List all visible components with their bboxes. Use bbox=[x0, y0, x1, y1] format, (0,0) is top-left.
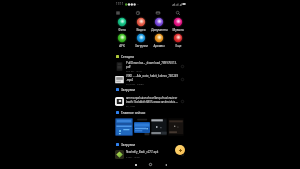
button[interactable]: Загрузки bbox=[132, 32, 150, 48]
button[interactable]: Назад bbox=[158, 160, 173, 169]
button[interactable]: APK bbox=[113, 32, 131, 48]
button[interactable] bbox=[168, 118, 184, 136]
button[interactable] bbox=[115, 118, 133, 136]
button[interactable]: Создать bbox=[175, 145, 185, 155]
button[interactable]: Меню bbox=[111, 9, 124, 16]
staticText: 8 МБ · 16:09 bbox=[126, 155, 140, 158]
staticText: Загрузки bbox=[121, 88, 136, 92]
button[interactable]: Недавние bbox=[128, 160, 143, 169]
staticText: 202 КБ · 16:18 bbox=[126, 69, 142, 72]
button[interactable]: Еще bbox=[169, 32, 187, 48]
button[interactable]: Фото bbox=[113, 16, 131, 32]
button[interactable]: Домой bbox=[143, 160, 158, 169]
staticText: Видео bbox=[136, 28, 146, 32]
staticText: 34,8 МБ · 9 мин bbox=[126, 82, 144, 85]
staticText: Сегодня bbox=[121, 55, 134, 59]
staticText: Загрузки bbox=[121, 143, 136, 147]
button[interactable]: Nashelly_Badi_v277.apk bbox=[105, 148, 195, 160]
staticText: Еще bbox=[175, 44, 182, 48]
staticText: Nashelly_Badi_v277.apk bbox=[126, 150, 159, 154]
button[interactable]: ammzzpakuianchcarlbnqufrusknuiesrbwtfc1b… bbox=[105, 93, 195, 109]
staticText: 67,1 МБ bbox=[126, 104, 136, 107]
staticText: ammzzpakuianchcarlbnqufrusknuiesrbwtfc1b… bbox=[126, 96, 179, 103]
staticText: PullDownloa..._download_789976013. pdf bbox=[126, 61, 177, 68]
staticText: Загрузки bbox=[135, 44, 148, 48]
button[interactable]: PullDownloa..._download_789976013. pdf bbox=[105, 60, 195, 73]
button[interactable]: VIKE - ...Ala_auto_habit_koleso_740249 .… bbox=[105, 73, 195, 85]
staticText: Главное сейчас bbox=[121, 111, 146, 115]
staticText: APK bbox=[119, 44, 125, 48]
button[interactable]: Папки bbox=[151, 9, 164, 16]
button[interactable] bbox=[151, 118, 167, 136]
staticText: Архивы bbox=[153, 44, 165, 48]
button[interactable]: Недавние bbox=[131, 9, 144, 16]
button[interactable]: Документы bbox=[150, 16, 168, 32]
button[interactable] bbox=[134, 118, 150, 136]
button[interactable]: Поиск bbox=[171, 9, 184, 16]
staticText: VIKE - ...Ala_auto_habit_koleso_740249 .… bbox=[126, 74, 179, 81]
button[interactable]: Музыка bbox=[169, 16, 187, 32]
staticText: 17:11 bbox=[116, 2, 124, 6]
staticText: Документы bbox=[151, 28, 168, 32]
staticText: Фото bbox=[118, 28, 126, 32]
staticText: Музыка bbox=[172, 28, 184, 32]
button[interactable]: Архивы bbox=[150, 32, 168, 48]
button[interactable]: Видео bbox=[132, 16, 150, 32]
